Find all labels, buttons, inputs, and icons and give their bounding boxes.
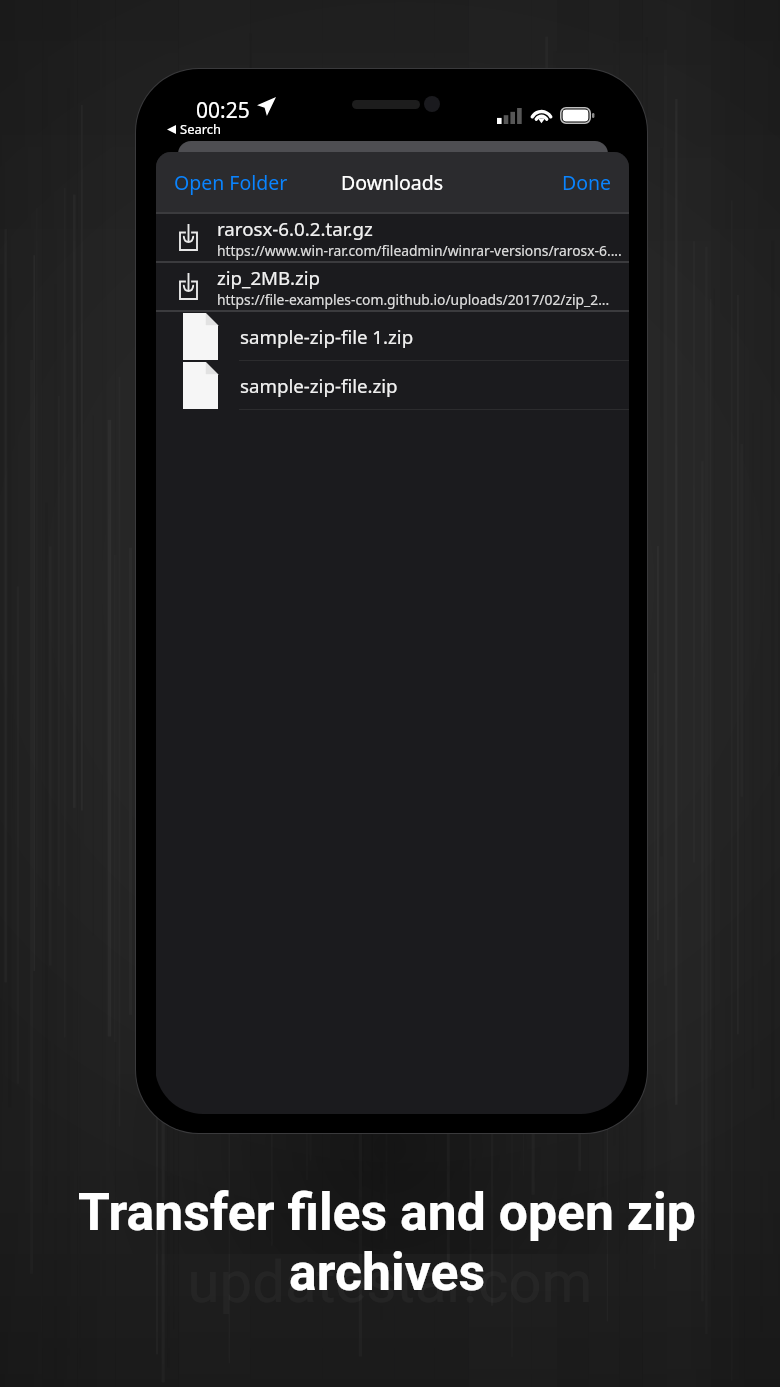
staticText: https://www.win-rar.com/fileadmin/winrar… — [217, 241, 622, 260]
button[interactable]: sample-zip-file 1.zip — [156, 312, 629, 360]
button[interactable]: sample-zip-file.zip — [156, 361, 629, 409]
button[interactable]: zip_2MB.zip — [156, 263, 629, 310]
button[interactable]: Open Folder — [156, 158, 302, 207]
staticText: sample-zip-file.zip — [240, 373, 398, 398]
staticText: zip_2MB.zip — [217, 265, 321, 290]
staticText: https://file-examples-com.github.io/uplo… — [217, 290, 610, 309]
button[interactable]: Search — [167, 120, 222, 138]
staticText: updatestar.com — [0, 1248, 780, 1316]
other: Location — [257, 97, 276, 116]
staticText: rarosx-6.0.2.tar.gz — [217, 216, 373, 241]
staticText: Search — [180, 120, 222, 138]
button[interactable]: Done — [548, 158, 629, 207]
staticText: Downloads — [341, 169, 444, 196]
staticText: Open Folder — [174, 169, 288, 196]
staticText: sample-zip-file 1.zip — [240, 324, 414, 349]
staticText: 00:25 — [196, 96, 250, 125]
staticText: Transfer files and open zip archives — [42, 1182, 732, 1302]
button[interactable]: rarosx-6.0.2.tar.gz — [156, 214, 629, 261]
staticText: Done — [562, 169, 612, 196]
